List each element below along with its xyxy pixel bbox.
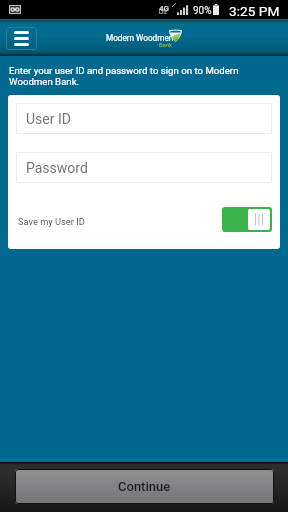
staticText: Enter your user ID and password to sign … xyxy=(9,65,239,88)
staticText: Password xyxy=(26,160,88,176)
staticText: Modern Woodmen xyxy=(106,33,174,43)
button[interactable]: User ID xyxy=(16,103,272,134)
staticText: Save my User ID xyxy=(18,216,85,227)
staticText: Continue xyxy=(118,479,171,494)
staticText: 3:25 PM xyxy=(229,3,280,19)
staticText: 90% xyxy=(193,5,212,17)
staticText: 4G xyxy=(159,4,170,13)
button[interactable]: Save my User ID toggle xyxy=(222,207,272,232)
button[interactable]: Menu xyxy=(6,27,37,50)
staticText: Bank xyxy=(159,42,172,49)
button[interactable]: Password xyxy=(16,152,272,183)
staticText: LTE xyxy=(159,9,168,15)
button[interactable]: Continue xyxy=(15,469,274,504)
staticText: User ID xyxy=(26,111,71,127)
